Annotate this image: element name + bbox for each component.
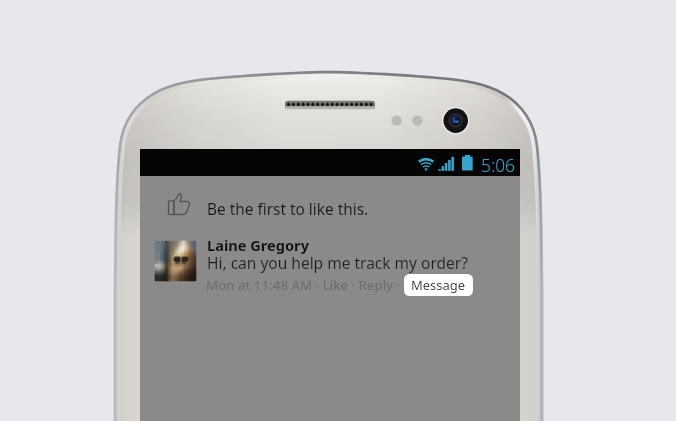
staticText: Hi, can you help me track my order? [207,252,468,273]
button[interactable]: Be the first to like this. [140,178,520,224]
button[interactable]: Message [404,274,473,296]
staticText: Laine Gregory [207,235,309,255]
staticText: Be the first to like this. [207,199,369,220]
staticText: Mon at 11:48 AM · Like · Reply · [206,276,404,294]
staticText: Message [411,276,466,294]
staticText: 5:06 [481,153,516,177]
